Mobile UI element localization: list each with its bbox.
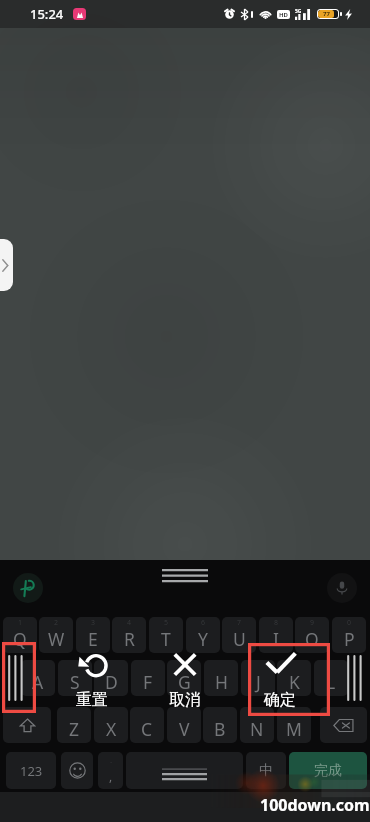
button[interactable]: Space	[126, 752, 243, 789]
staticText: 5G	[295, 8, 302, 15]
button[interactable]: 2	[39, 617, 73, 653]
button[interactable]: 8	[259, 617, 293, 653]
button[interactable]: 3	[76, 617, 110, 653]
button[interactable]: 1	[3, 617, 37, 653]
staticText: 3	[91, 618, 96, 628]
staticText: Q	[13, 627, 27, 651]
staticText: K	[289, 670, 300, 694]
button[interactable]: A	[21, 660, 55, 696]
button[interactable]: V	[167, 707, 201, 743]
staticText: 15:24	[30, 5, 64, 23]
button[interactable]: 0	[332, 617, 366, 653]
button[interactable]: Input method settings	[13, 573, 43, 603]
button[interactable]: 完成	[289, 752, 367, 789]
staticText: O	[305, 627, 319, 651]
staticText: D	[105, 670, 118, 694]
button[interactable]: Emoji	[61, 752, 93, 789]
button[interactable]: M	[277, 707, 311, 743]
staticText: X	[106, 717, 117, 741]
button[interactable]: Shift	[3, 707, 51, 743]
staticText: 8	[274, 618, 279, 628]
button[interactable]: 重置	[70, 650, 114, 710]
staticText: HD	[279, 11, 288, 19]
button[interactable]: N	[240, 707, 274, 743]
staticText: 7	[237, 618, 242, 628]
button[interactable]: 4	[112, 617, 146, 653]
button[interactable]: 7	[222, 617, 256, 653]
button[interactable]: ·	[98, 752, 123, 789]
button[interactable]: J	[241, 660, 275, 696]
button[interactable]: C	[130, 707, 164, 743]
staticText: N	[250, 717, 264, 741]
staticText: 完成	[314, 762, 342, 780]
button[interactable]: 123	[6, 752, 56, 789]
button[interactable]: D	[94, 660, 128, 696]
staticText: L	[326, 670, 336, 694]
button[interactable]: S	[58, 660, 92, 696]
staticText: 1	[18, 618, 23, 628]
staticText: 77	[323, 10, 330, 18]
staticText: 取消	[169, 690, 201, 710]
staticText: A	[32, 670, 44, 694]
staticText: W	[48, 627, 65, 651]
staticText: 0	[347, 618, 352, 628]
staticText: 123	[20, 762, 43, 780]
staticText: 5	[164, 618, 169, 628]
staticText: B	[214, 717, 226, 741]
button[interactable]: 确定	[258, 650, 302, 710]
button[interactable]: Voice input	[327, 573, 357, 603]
button[interactable]: F	[131, 660, 165, 696]
button[interactable]: Backspace	[320, 707, 367, 743]
button[interactable]: Z	[57, 707, 91, 743]
staticText: F	[143, 670, 153, 694]
staticText: H	[215, 670, 228, 694]
staticText: E	[88, 627, 98, 651]
button[interactable]: 9	[295, 617, 329, 653]
staticText: T	[161, 627, 171, 651]
button[interactable]: Open panel	[0, 239, 13, 291]
button[interactable]: 取消	[163, 650, 207, 710]
staticText: 9	[310, 618, 315, 628]
staticText: ,	[109, 768, 113, 784]
staticText: P	[344, 627, 355, 651]
button[interactable]: X	[94, 707, 128, 743]
staticText: R	[124, 627, 135, 651]
staticText: V	[179, 717, 190, 741]
staticText: 确定	[264, 690, 296, 710]
button[interactable]: G	[167, 660, 201, 696]
button[interactable]: 中	[246, 752, 286, 789]
staticText: C	[141, 717, 153, 741]
staticText: U	[233, 627, 246, 651]
staticText: I	[273, 627, 279, 651]
staticText: 重置	[76, 690, 108, 710]
button[interactable]: B	[203, 707, 237, 743]
button[interactable]: H	[204, 660, 238, 696]
button[interactable]: 6	[186, 617, 220, 653]
staticText: G	[178, 670, 191, 694]
button[interactable]: L	[314, 660, 348, 696]
staticText: 4	[127, 618, 132, 628]
staticText: S	[70, 670, 80, 694]
button[interactable]: K	[277, 660, 311, 696]
staticText: 中	[259, 762, 273, 780]
staticText: M	[286, 717, 302, 741]
staticText: 100down.com	[260, 794, 370, 816]
staticText: Z	[69, 717, 80, 741]
staticText: 2	[54, 618, 59, 628]
staticText: J	[256, 670, 261, 694]
staticText: Y	[198, 627, 208, 651]
button[interactable]: 5	[149, 617, 183, 653]
staticText: 6	[201, 618, 206, 628]
